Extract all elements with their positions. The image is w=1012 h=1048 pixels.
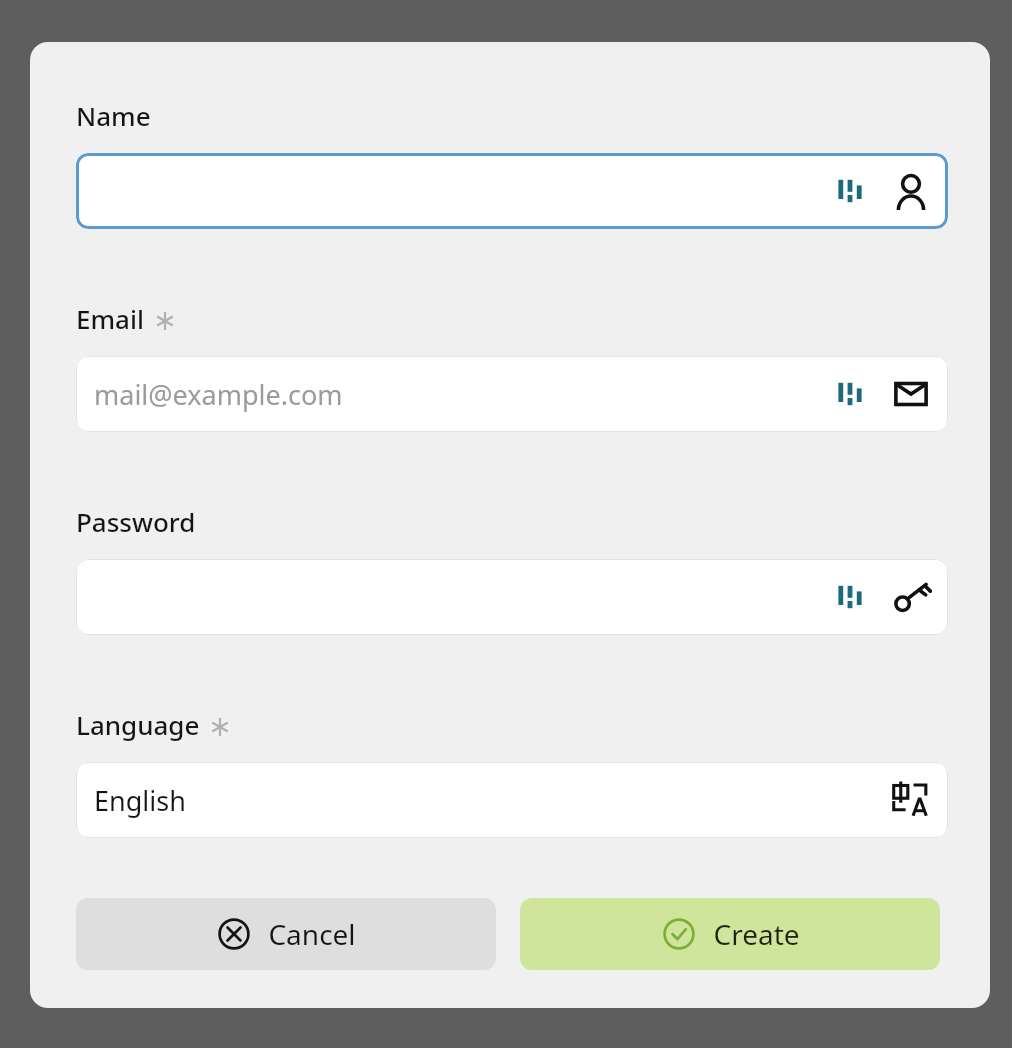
staticText: Cancel: [268, 915, 356, 953]
staticText: Language: [76, 707, 200, 742]
button[interactable]: Cancel: [76, 898, 496, 970]
button[interactable]: Autofill: [832, 577, 872, 617]
button[interactable]: English: [76, 762, 948, 838]
button[interactable]: Generate password: [890, 576, 932, 618]
button[interactable]: Autofill: [832, 374, 872, 414]
button[interactable]: Autofill: [76, 153, 948, 229]
staticText: Name: [76, 98, 151, 133]
staticText: Email: [76, 301, 145, 336]
button[interactable]: Email: [890, 373, 932, 415]
button[interactable]: mail@example.com: [76, 356, 948, 432]
button[interactable]: Autofill: [76, 559, 948, 635]
staticText: Password: [76, 504, 196, 539]
button[interactable]: Create: [520, 898, 940, 970]
staticText: English: [94, 782, 186, 819]
button[interactable]: Change language: [888, 778, 932, 822]
button[interactable]: Contact: [890, 170, 932, 212]
button[interactable]: Autofill: [832, 171, 872, 211]
staticText: mail@example.com: [94, 376, 343, 413]
staticText: Create: [713, 915, 800, 953]
